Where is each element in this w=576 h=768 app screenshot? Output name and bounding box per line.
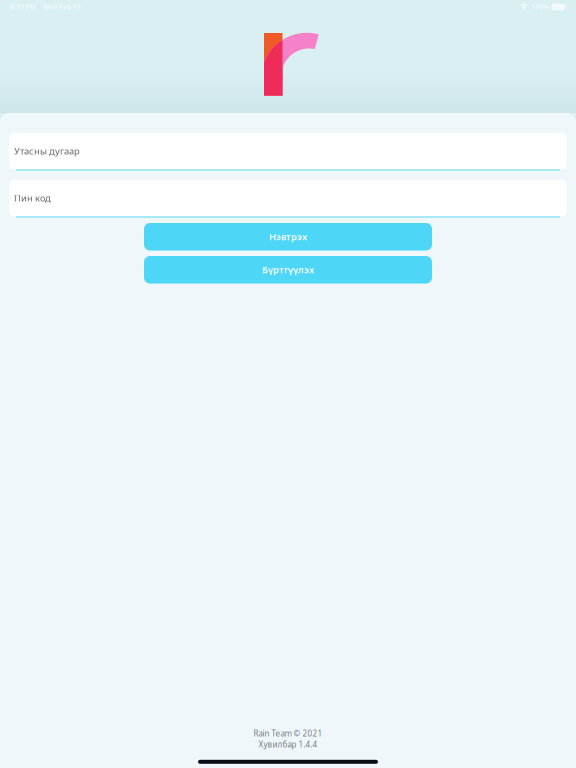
staticText: 100%: [531, 3, 549, 11]
staticText: Бүртгүүлэх: [262, 264, 314, 276]
button[interactable]: Нэвтрэх: [144, 223, 432, 250]
staticText: Пин код: [14, 192, 51, 204]
staticText: Rain Team © 2021: [253, 728, 322, 739]
button[interactable]: Бүртгүүлэх: [144, 256, 432, 283]
staticText: Хувилбар 1.4.4: [258, 739, 317, 750]
staticText: 8:10 PM: [10, 3, 36, 11]
button[interactable]: Пин код: [9, 180, 567, 218]
staticText: Нэвтрэх: [269, 231, 307, 243]
button[interactable]: Утасны дугаар: [9, 133, 567, 171]
staticText: Wed Feb 17: [43, 3, 81, 11]
staticText: Утасны дугаар: [14, 145, 80, 157]
